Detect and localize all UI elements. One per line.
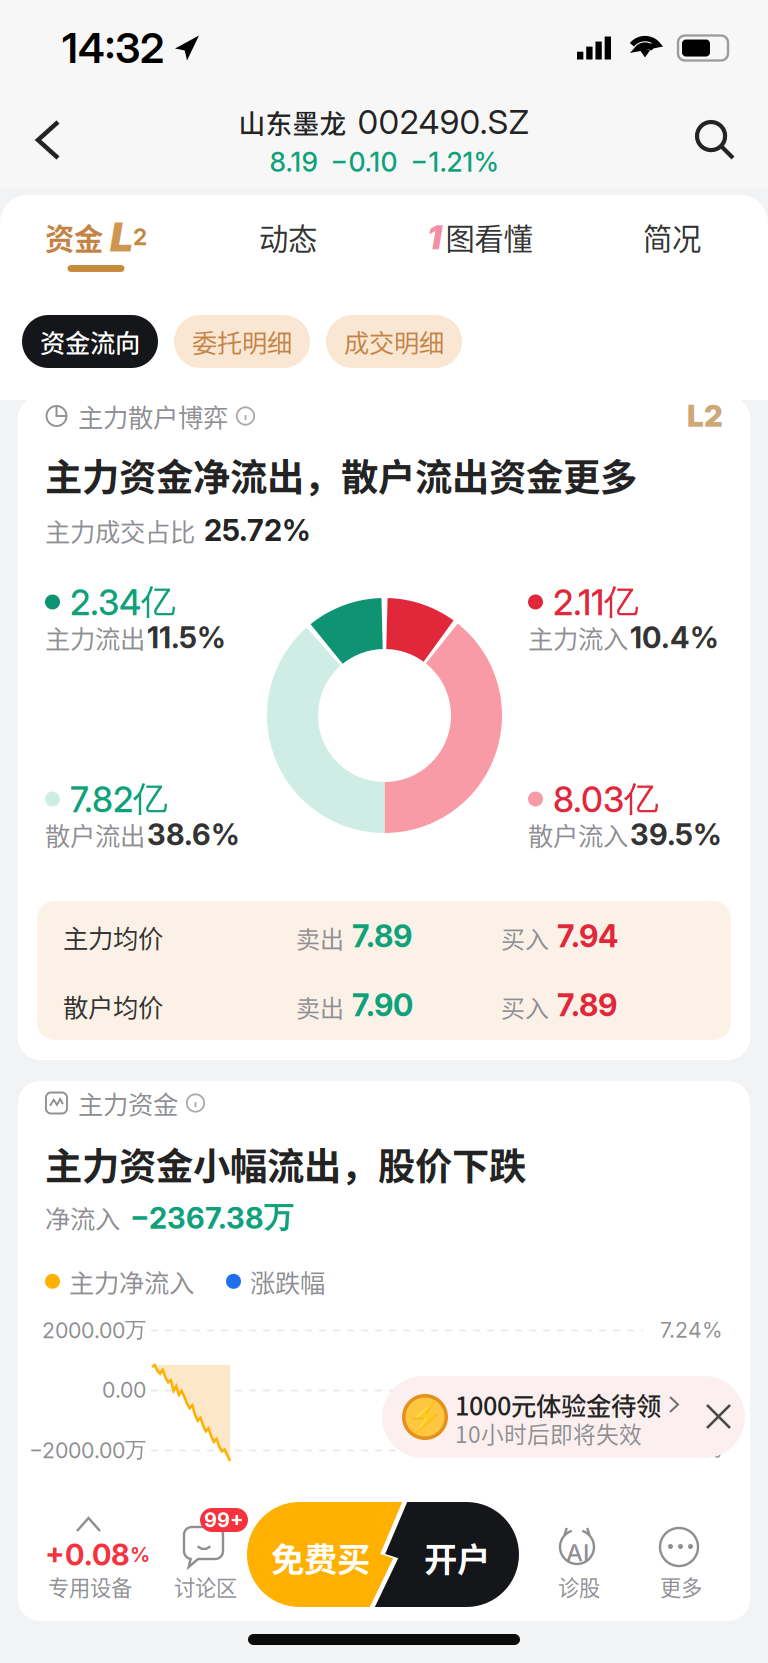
staticText: 7.89 [352,917,412,955]
staticText: 2.11亿 [553,580,639,624]
staticText: −2367.38万 [130,1199,293,1236]
button[interactable]: 资金 [0,195,192,295]
staticText: 002490.SZ [357,102,529,142]
staticText: 0.00% [658,1437,723,1463]
button[interactable]: 委托明细 [174,315,310,368]
staticText: 散户流入 [528,816,628,853]
staticText: 开户 [424,1533,490,1581]
staticText: 0.00 [102,1377,146,1403]
staticText: L2 [687,398,723,434]
staticText: AI [566,1538,589,1567]
staticText: 主力资金净流出，散户流出资金更多 [45,448,637,502]
staticText: 免费买 [271,1533,370,1581]
staticText: 7.94 [557,917,618,955]
staticText: 图看懂 [445,216,532,258]
staticText: 39.5% [630,817,722,852]
staticText: % [130,1543,150,1567]
staticText: 主力成交占比 [45,512,195,549]
staticText: 8.19 [269,146,317,178]
staticText: −0.10 [330,146,397,178]
staticText: 2 [133,223,147,251]
staticText: 动态 [259,216,317,258]
button[interactable]: AI [527,1499,627,1609]
button[interactable]: Back [12,104,84,176]
button[interactable]: +0.08 [22,1499,150,1609]
button[interactable]: 简况 [576,195,768,295]
button[interactable]: 1 [384,195,576,295]
staticText: +0.08 [45,1537,130,1572]
staticText: 涨跌幅 [250,1263,325,1300]
staticText: 主力流出 [45,619,145,656]
staticText: 主力资金小幅流出，股价下跌 [45,1137,526,1191]
staticText: 主力资金 [78,1085,178,1121]
staticText: L [110,213,133,261]
staticText: 成交明细 [344,323,444,360]
button[interactable]: 动态 [192,195,384,295]
staticText: 净流入 [45,1199,120,1236]
staticText: −2000.00万 [29,1437,146,1463]
button[interactable]: 资金流向 [22,315,158,368]
button[interactable]: 99+ [153,1499,265,1609]
staticText: 诊股 [558,1571,600,1602]
staticText: 买入 [501,989,549,1024]
staticText: 7.90 [352,986,413,1024]
staticText: 更多 [660,1571,702,1602]
staticText: ⚡ [406,1400,443,1434]
staticText: 7.24% [660,1317,723,1343]
staticText: 主力净流入 [69,1263,194,1300]
staticText: 1000元体验金待领 [455,1386,661,1423]
staticText: 7.82亿 [70,777,168,821]
staticText: 委托明细 [192,323,292,360]
staticText: −1.21% [410,146,498,178]
staticText: 资金 [45,216,103,258]
staticText: 资金流向 [40,323,140,360]
staticText: 10.4% [630,620,719,655]
staticText: 散户流出 [45,816,145,853]
staticText: 11.5% [147,620,226,655]
staticText: 专用设备 [48,1571,132,1602]
button[interactable]: Search [674,104,756,176]
staticText: 买入 [501,920,549,955]
staticText: 散户均价 [63,987,163,1024]
staticText: 25.72% [204,513,311,548]
button[interactable]: 成交明细 [326,315,462,368]
staticText: 99+ [204,1508,244,1532]
staticText: 卖出 [296,920,344,955]
button[interactable]: 更多 [629,1499,729,1609]
staticText: 14:32 [62,23,164,73]
staticText: 38.6% [147,817,240,852]
staticText: 2000.00万 [42,1317,146,1343]
staticText: 0.00% [658,1377,723,1403]
button[interactable]: Close [693,1391,744,1442]
staticText: 主力均价 [63,918,163,955]
staticText: 卖出 [296,989,344,1024]
staticText: 7.89 [557,986,617,1024]
button[interactable]: 免费买 [247,1502,519,1607]
staticText: 2.34亿 [70,580,176,624]
staticText: 主力流入 [528,619,628,656]
staticText: 主力散户博弈 [78,398,228,434]
staticText: 10小时后即将失效 [455,1417,642,1449]
staticText: 山东墨龙 [238,103,346,141]
staticText: 讨论区 [174,1571,237,1602]
staticText: 8.03亿 [553,777,659,821]
staticText: 1 [427,217,441,257]
staticText: 简况 [643,216,701,258]
